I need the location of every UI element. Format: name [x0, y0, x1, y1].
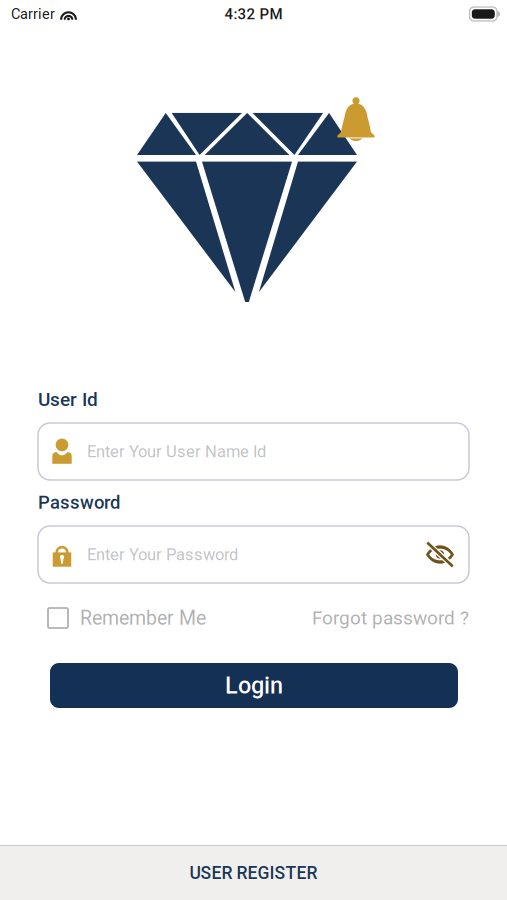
button[interactable]: Show password	[418, 532, 462, 576]
staticText: User Id	[38, 388, 98, 411]
staticText: Carrier	[11, 5, 55, 22]
staticText: Enter Your Password	[87, 545, 238, 564]
staticText: Forgot password ?	[312, 607, 469, 629]
staticText: USER REGISTER	[189, 863, 317, 883]
button[interactable]: Forgot password ?	[312, 605, 469, 631]
button[interactable]: Login	[50, 663, 458, 708]
staticText: Password	[38, 492, 120, 513]
staticText: Enter Your User Name Id	[87, 442, 266, 461]
button[interactable]: Remember Me	[48, 605, 206, 631]
staticText: 4:32 PM	[224, 5, 282, 23]
staticText: Remember Me	[80, 607, 206, 629]
button[interactable]: USER REGISTER	[0, 846, 507, 900]
staticText: Login	[225, 672, 283, 699]
